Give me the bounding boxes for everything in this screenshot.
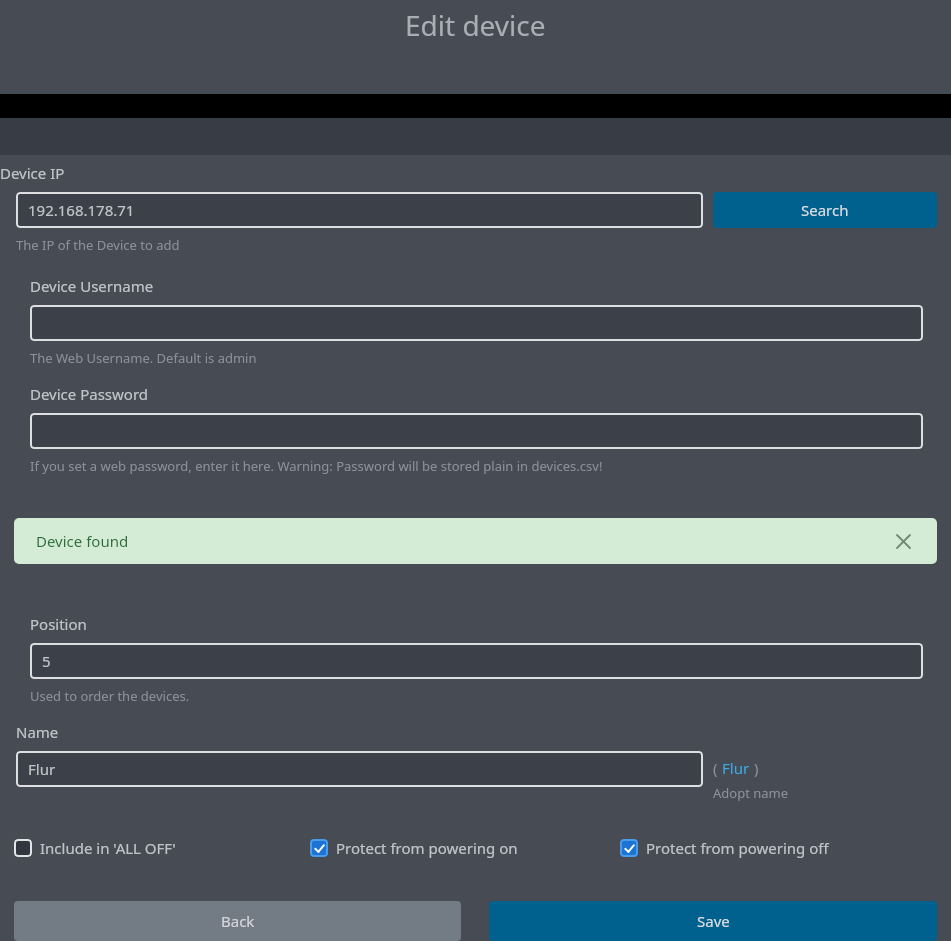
- staticText: The IP of the Device to add: [16, 236, 180, 254]
- staticText: Name: [16, 722, 59, 742]
- staticText: Protect from powering on: [336, 838, 518, 858]
- button[interactable]: (: [713, 758, 759, 778]
- staticText: Back: [221, 911, 255, 931]
- button[interactable]: 192.168.178.71: [16, 192, 703, 228]
- staticText: Used to order the devices.: [30, 687, 190, 705]
- staticText: Protect from powering off: [646, 838, 829, 858]
- staticText: 5: [42, 651, 51, 671]
- staticText: Device found: [36, 531, 129, 551]
- staticText: Search: [801, 200, 849, 220]
- button[interactable]: Search: [713, 192, 937, 228]
- staticText: Adopt name: [713, 784, 789, 802]
- staticText: Flur: [28, 759, 56, 779]
- staticText: Device Username: [30, 276, 154, 296]
- staticText: Edit device: [405, 6, 546, 44]
- button[interactable]: Back: [14, 901, 461, 941]
- button[interactable]: Protect from powering off: [620, 838, 829, 858]
- staticText: ): [750, 758, 759, 778]
- staticText: Save: [697, 911, 730, 931]
- button[interactable]: [30, 305, 923, 341]
- staticText: Flur: [722, 758, 750, 778]
- button[interactable]: 5: [30, 643, 923, 679]
- staticText: 192.168.178.71: [28, 200, 135, 220]
- staticText: If you set a web password, enter it here…: [30, 457, 603, 475]
- staticText: Position: [30, 614, 87, 634]
- button[interactable]: Include in 'ALL OFF': [14, 838, 176, 858]
- button[interactable]: [30, 413, 923, 449]
- staticText: Device IP: [0, 163, 65, 183]
- button[interactable]: Dismiss: [891, 529, 915, 553]
- staticText: Device Password: [30, 384, 149, 404]
- staticText: Include in 'ALL OFF': [40, 838, 176, 858]
- button[interactable]: Flur: [16, 751, 703, 787]
- staticText: (: [713, 758, 722, 778]
- button[interactable]: Protect from powering on: [310, 838, 518, 858]
- staticText: The Web Username. Default is admin: [30, 349, 257, 367]
- button[interactable]: Save: [489, 901, 937, 941]
